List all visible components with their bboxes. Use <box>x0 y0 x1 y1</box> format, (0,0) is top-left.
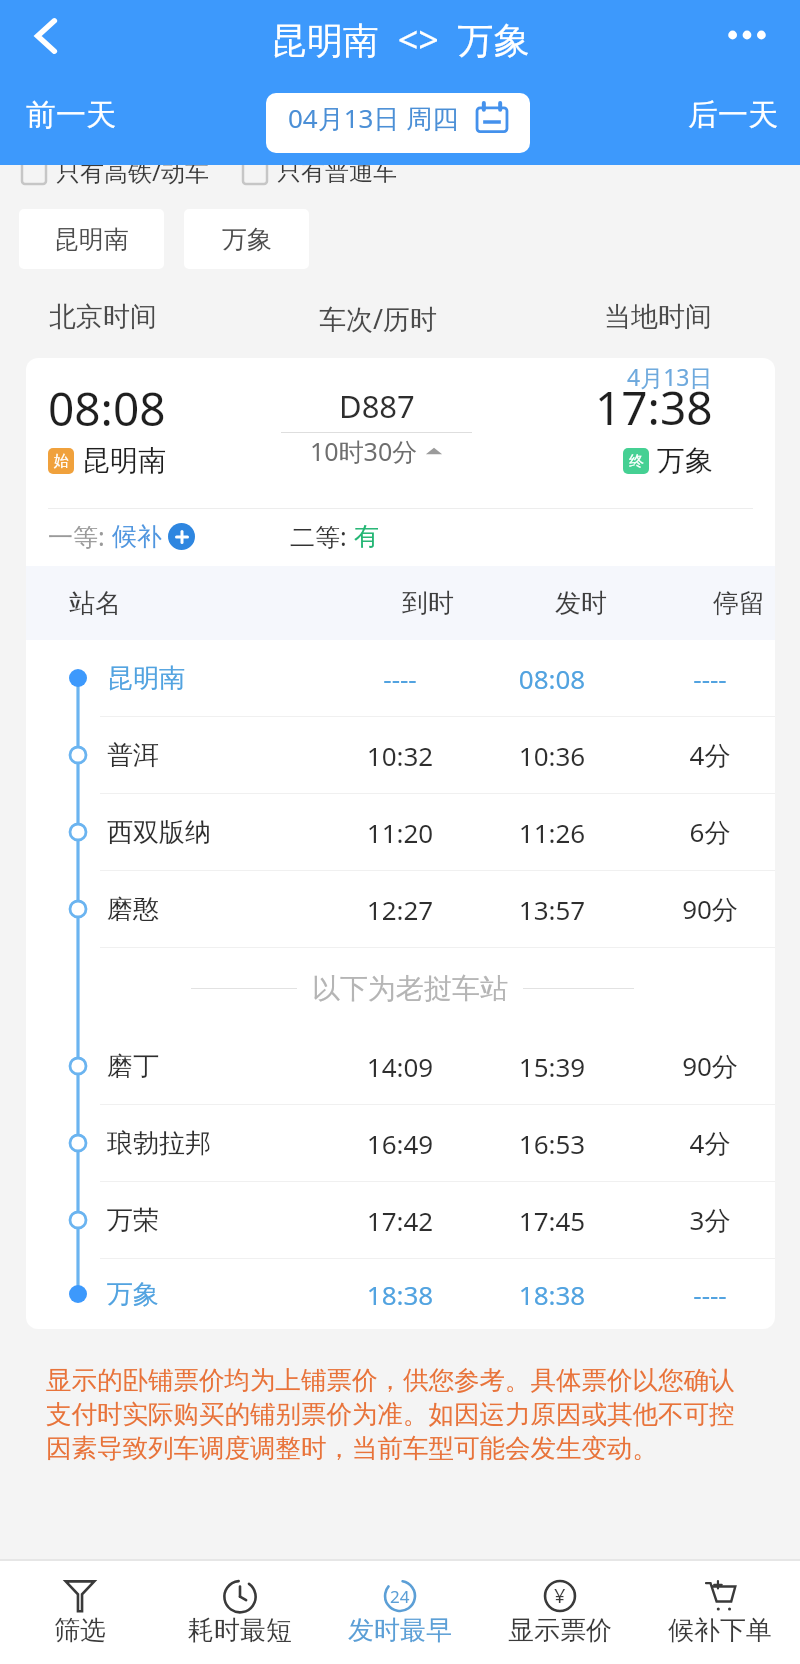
button[interactable]: 24 <box>320 1561 480 1664</box>
button[interactable]: 磨憨 <box>26 871 775 947</box>
staticText: 08:08 <box>497 661 607 696</box>
button[interactable]: 前一天 <box>26 96 116 134</box>
staticText: 北京时间 <box>49 300 157 334</box>
staticText: 万象 <box>222 224 272 255</box>
staticText: 始 <box>54 452 69 471</box>
button[interactable]: Back <box>19 9 73 63</box>
staticText: 17:42 <box>345 1203 455 1238</box>
button[interactable]: 候补下单 <box>640 1561 800 1664</box>
staticText: 磨丁 <box>107 1050 159 1083</box>
staticText: 4分 <box>655 1125 765 1161</box>
staticText: 16:53 <box>497 1126 607 1161</box>
staticText: 15:39 <box>497 1049 607 1084</box>
button[interactable]: 磨丁 <box>26 1028 775 1104</box>
staticText: 万象 <box>107 1278 159 1311</box>
button[interactable]: 普洱 <box>26 717 775 793</box>
staticText: 万荣 <box>107 1204 159 1237</box>
button[interactable]: 筛选 <box>0 1561 160 1664</box>
button[interactable]: 后一天 <box>688 96 778 134</box>
button[interactable]: 万象 <box>184 209 309 269</box>
staticText: 筛选 <box>54 1614 106 1647</box>
staticText: 一等: <box>48 519 112 553</box>
button[interactable]: ¥ <box>480 1561 640 1664</box>
staticText: 10:36 <box>497 738 607 773</box>
button[interactable]: More options <box>720 8 774 62</box>
staticText: 候补 <box>112 521 162 552</box>
staticText: 站名 <box>69 587 121 620</box>
staticText: 磨憨 <box>107 893 159 926</box>
staticText: 24 <box>390 1585 410 1608</box>
staticText: 90分 <box>655 1048 765 1084</box>
staticText: ---- <box>655 1277 765 1312</box>
button[interactable]: 昆明南 <box>26 640 775 716</box>
staticText: 万象 <box>657 443 713 478</box>
staticText: 3分 <box>655 1202 765 1238</box>
staticText: 10时30分 <box>310 434 418 468</box>
staticText: 17:45 <box>497 1203 607 1238</box>
button[interactable]: 04月13日 周四 <box>266 93 530 153</box>
staticText: 显示票价 <box>508 1614 612 1647</box>
staticText: 昆明南 <box>82 443 166 478</box>
button[interactable]: 昆明南 <box>19 209 164 269</box>
staticText: 候补下单 <box>668 1614 772 1647</box>
staticText: 11:26 <box>497 815 607 850</box>
staticText: 4月13日 <box>627 361 713 392</box>
staticText: 14:09 <box>345 1049 455 1084</box>
staticText: 前一天 <box>26 96 116 134</box>
staticText: 因素导致列车调度调整时，当前车型可能会发生变动。 <box>46 1432 658 1464</box>
staticText: 12:27 <box>345 892 455 927</box>
staticText: 发时最早 <box>348 1614 452 1647</box>
staticText: 有 <box>354 521 379 552</box>
staticText: 昆明南 <box>107 662 185 695</box>
staticText: 以下为老挝车站 <box>312 971 508 1006</box>
staticText: 6分 <box>655 814 765 850</box>
staticText: 18:38 <box>497 1277 607 1312</box>
button[interactable]: 万象 <box>26 1259 775 1329</box>
staticText: 昆明南 <> 万象 <box>271 15 530 64</box>
staticText: 4分 <box>655 737 765 773</box>
staticText: 二等: <box>290 519 354 553</box>
staticText: ¥ <box>554 1582 566 1609</box>
staticText: 停留 <box>684 587 775 620</box>
staticText: ---- <box>345 661 455 696</box>
button[interactable]: 万荣 <box>26 1182 775 1258</box>
staticText: 11:20 <box>345 815 455 850</box>
staticText: 13:57 <box>497 892 607 927</box>
staticText: 到时 <box>373 587 483 620</box>
staticText: 只有普通车 <box>277 157 397 187</box>
button[interactable]: 西双版纳 <box>26 794 775 870</box>
staticText: 终 <box>629 452 644 471</box>
staticText: ---- <box>655 661 765 696</box>
staticText: 16:49 <box>345 1126 455 1161</box>
staticText: 10:32 <box>345 738 455 773</box>
staticText: 昆明南 <box>54 224 129 255</box>
staticText: 耗时最短 <box>188 1614 292 1647</box>
staticText: 90分 <box>655 891 765 927</box>
staticText: 显示的卧铺票价均为上铺票价，供您参考。具体票价以您确认 <box>46 1364 735 1396</box>
staticText: 车次/历时 <box>319 300 438 337</box>
button[interactable]: 耗时最短 <box>160 1561 320 1664</box>
staticText: 发时 <box>526 587 636 620</box>
staticText: 后一天 <box>688 96 778 134</box>
staticText: 只有高铁/动车 <box>56 155 209 188</box>
staticText: 当地时间 <box>604 300 712 334</box>
staticText: 04月13日 周四 <box>288 100 459 136</box>
staticText: 普洱 <box>107 739 159 772</box>
staticText: 18:38 <box>345 1277 455 1312</box>
button[interactable]: 琅勃拉邦 <box>26 1105 775 1181</box>
staticText: 西双版纳 <box>107 816 211 849</box>
staticText: 17:38 <box>595 376 713 439</box>
staticText: 支付时实际购买的铺别票价为准。如因运力原因或其他不可控 <box>46 1398 735 1430</box>
staticText: 08:08 <box>48 377 166 440</box>
staticText: 琅勃拉邦 <box>107 1127 211 1160</box>
staticText: D887 <box>339 385 415 427</box>
